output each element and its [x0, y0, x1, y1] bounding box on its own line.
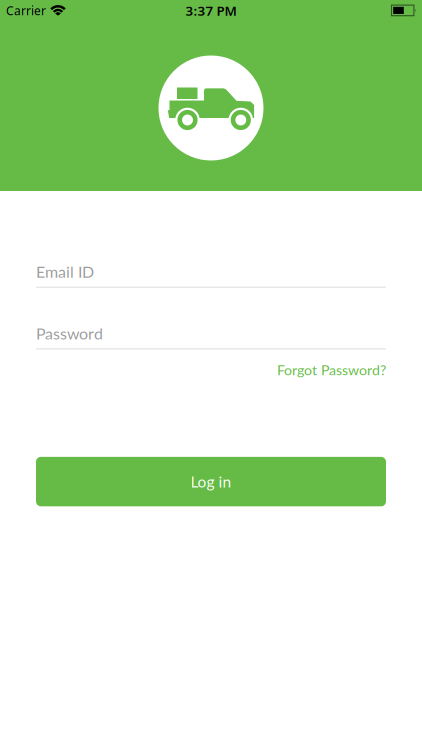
- staticText: Log in: [190, 472, 231, 491]
- button[interactable]: Email ID: [36, 262, 386, 288]
- staticText: 3:37 PM: [185, 2, 236, 19]
- staticText: Password: [36, 324, 103, 343]
- staticText: Forgot Password?: [277, 361, 386, 378]
- staticText: Email ID: [36, 262, 94, 281]
- button[interactable]: Password: [36, 324, 386, 349]
- staticText: Carrier: [6, 2, 46, 18]
- button[interactable]: Log in: [36, 457, 386, 506]
- button[interactable]: Forgot Password?: [277, 361, 386, 378]
